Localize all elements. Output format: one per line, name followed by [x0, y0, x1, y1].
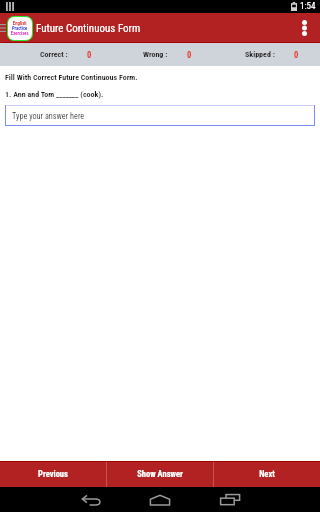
button[interactable]: Previous — [0, 461, 106, 487]
staticText: 1:54 — [300, 1, 316, 12]
staticText: 0 — [87, 50, 92, 60]
staticText: Fill With Correct Future Continuous Form… — [5, 73, 138, 82]
staticText: Practice — [12, 26, 28, 31]
button[interactable]: App logo — [8, 17, 32, 40]
staticText: 0 — [294, 50, 299, 60]
staticText: Correct : — [40, 50, 68, 59]
button[interactable]: Recent apps — [207, 487, 252, 512]
button[interactable]: Skipped : — [245, 43, 299, 66]
button[interactable]: Wrong : — [143, 43, 192, 66]
staticText: Future Continuous Form — [36, 22, 141, 35]
staticText: English — [13, 21, 27, 26]
staticText: Show Answer — [137, 469, 183, 479]
button[interactable]: Next — [214, 461, 320, 487]
button[interactable]: Show Answer — [107, 461, 213, 487]
button[interactable]: Back — [69, 487, 114, 512]
button[interactable]: Menu — [0, 16, 6, 40]
staticText: Skipped : — [245, 50, 275, 59]
staticText: Wrong : — [143, 50, 168, 59]
button[interactable]: Correct : — [40, 43, 92, 66]
staticText: 1. Ann and Tom _______ (cook). — [5, 90, 104, 99]
button[interactable]: Type your answer here — [5, 105, 315, 126]
staticText: Type your answer here — [12, 111, 85, 121]
staticText: Previous — [38, 469, 68, 479]
button[interactable]: More options — [288, 13, 320, 43]
button[interactable]: Home — [137, 487, 182, 512]
staticText: 0 — [187, 50, 192, 60]
staticText: Exercises — [11, 31, 29, 36]
staticText: Next — [259, 469, 275, 479]
